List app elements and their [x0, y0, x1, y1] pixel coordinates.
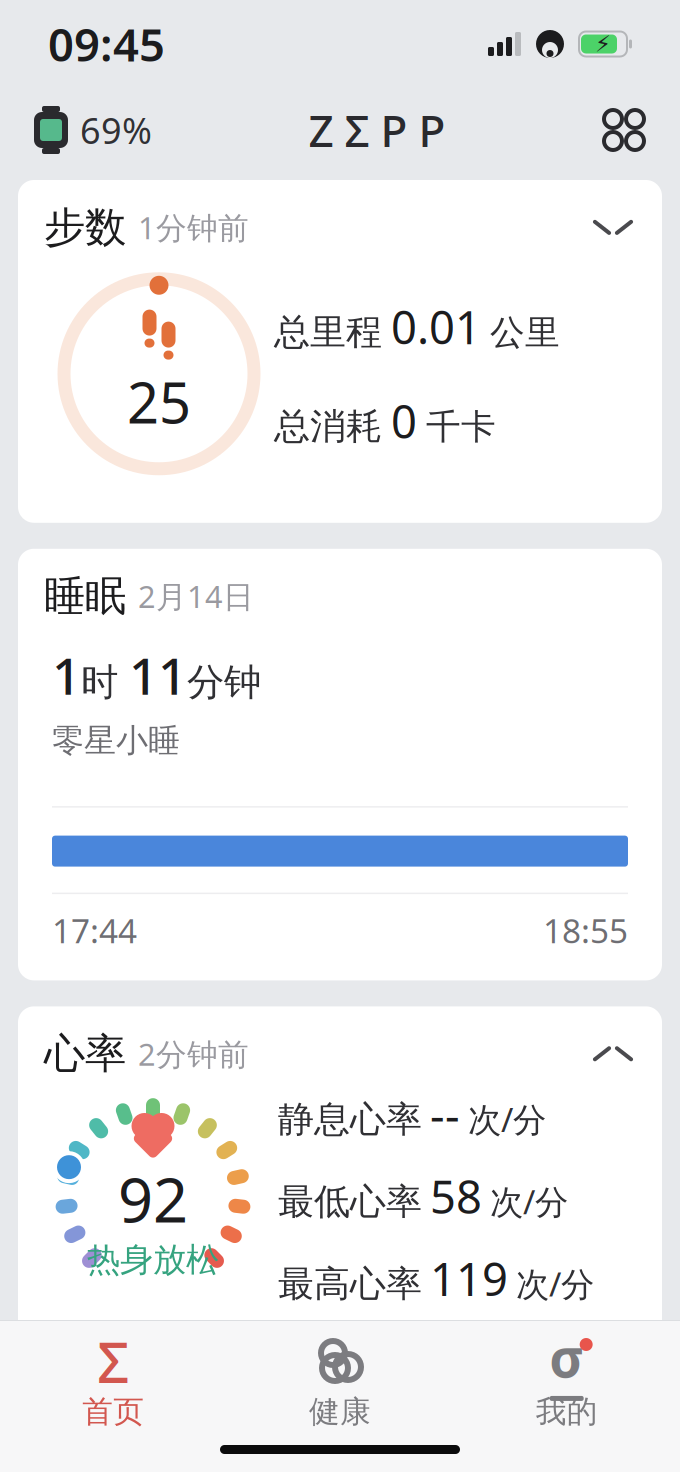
staticText: 1: [52, 641, 81, 709]
staticText: σ: [549, 1321, 584, 1392]
staticText: 总消耗: [274, 404, 382, 449]
staticText: 最高心率: [278, 1262, 422, 1306]
staticText: 次/分: [468, 1097, 546, 1141]
staticText: 我的: [536, 1393, 598, 1431]
staticText: 千卡: [426, 406, 496, 448]
staticText: 公里: [490, 311, 560, 354]
staticText: 最低心率: [278, 1180, 422, 1224]
staticText: 25: [127, 365, 191, 439]
button[interactable]: Apps: [602, 108, 646, 152]
staticText: 心率: [44, 1028, 126, 1079]
staticText: 09:45: [48, 14, 165, 74]
staticText: 次/分: [490, 1179, 568, 1223]
staticText: 次/分: [516, 1261, 594, 1306]
staticText: 1分钟前: [138, 207, 249, 248]
staticText: 首页: [82, 1393, 144, 1431]
staticText: 18:55: [543, 908, 628, 952]
button[interactable]: 健康: [227, 1337, 453, 1431]
staticText: 步数: [44, 202, 126, 253]
staticText: 69%: [80, 106, 152, 154]
staticText: 时: [81, 659, 129, 705]
staticText: 全天平均心率 86 次/分: [52, 1325, 413, 1373]
staticText: 0: [391, 391, 417, 451]
button[interactable]: Collapse: [590, 1034, 636, 1074]
staticText: 热身放松: [87, 1239, 219, 1280]
staticText: 分钟: [187, 659, 261, 705]
staticText: 11: [129, 641, 187, 709]
staticText: 睡眠: [44, 571, 126, 622]
staticText: 119: [430, 1248, 508, 1308]
staticText: 92: [118, 1158, 188, 1239]
staticText: --: [430, 1084, 460, 1144]
staticText: 零星小睡: [52, 721, 180, 760]
staticText: 2分钟前: [138, 1033, 249, 1074]
staticText: ⚡︎: [595, 31, 611, 57]
button[interactable]: 步数: [18, 180, 662, 523]
staticText: 58: [430, 1166, 482, 1226]
button[interactable]: 心率: [18, 1006, 662, 1472]
staticText: Z Σ P P: [308, 101, 445, 159]
staticText: 静息心率: [278, 1097, 422, 1142]
button[interactable]: σ: [453, 1337, 680, 1431]
button[interactable]: Expand: [590, 207, 636, 247]
staticText: 2月14日: [138, 576, 254, 616]
staticText: 总里程: [274, 310, 382, 354]
button[interactable]: 睡眠: [18, 549, 662, 980]
button[interactable]: 69%: [34, 106, 152, 154]
staticText: 17:44: [52, 908, 137, 952]
staticText: 0.01: [391, 297, 481, 357]
button[interactable]: Σ: [0, 1337, 227, 1431]
staticText: Σ: [97, 1324, 129, 1398]
staticText: 健康: [309, 1393, 371, 1431]
